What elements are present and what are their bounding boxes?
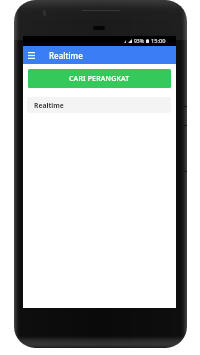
staticText: Realtime	[49, 50, 83, 61]
staticText: 15:00	[151, 37, 166, 45]
button[interactable]: Open navigation menu	[25, 46, 37, 64]
button[interactable]: CARI PERANGKAT	[28, 69, 171, 88]
staticText: Realtime	[34, 101, 64, 110]
staticText: CARI PERANGKAT	[69, 74, 130, 84]
button[interactable]: Realtime	[27, 97, 171, 113]
staticText: 93%	[134, 38, 144, 45]
